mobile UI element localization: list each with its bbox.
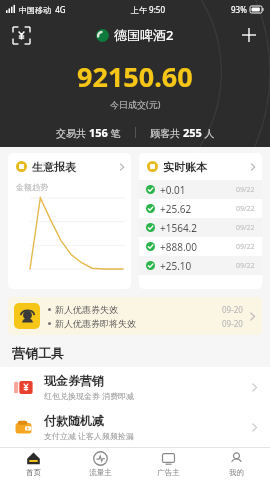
- staticText: +1564.2: [160, 221, 197, 235]
- staticText: 255: [183, 125, 202, 140]
- staticText: 顾客共: [150, 126, 183, 140]
- button[interactable]: 新人优惠券失效: [8, 297, 262, 335]
- staticText: 今日成交(元): [110, 98, 161, 110]
- staticText: 付款随机减: [44, 413, 104, 428]
- staticText: 新人优惠券失效: [55, 304, 118, 315]
- staticText: 笔: [108, 126, 121, 140]
- staticText: 首页: [26, 468, 41, 477]
- button[interactable]: 生意报表: [8, 153, 131, 289]
- staticText: 92150.60: [77, 58, 193, 95]
- staticText: 09-20: [222, 318, 243, 329]
- button[interactable]: Add: [238, 24, 260, 46]
- staticText: 支付立减 让客人频频捡漏: [44, 430, 135, 441]
- staticText: +888.00: [160, 240, 197, 254]
- staticText: 营销工具: [12, 345, 64, 361]
- staticText: 广告主: [157, 468, 180, 477]
- staticText: 09/22: [236, 261, 255, 271]
- button[interactable]: 流量主: [67, 448, 134, 480]
- button[interactable]: 现金券营销: [0, 367, 270, 407]
- button[interactable]: Scan to collect payment: [10, 24, 32, 46]
- staticText: 中国移动 4G: [19, 4, 66, 15]
- staticText: 实时账本: [163, 160, 207, 174]
- staticText: 09/22: [236, 204, 255, 214]
- button[interactable]: 实时账本: [139, 153, 262, 289]
- button[interactable]: 我的: [202, 448, 270, 480]
- staticText: 流量主: [89, 468, 112, 477]
- staticText: 09/22: [236, 223, 255, 233]
- button[interactable]: 广告主: [134, 448, 202, 480]
- staticText: 我的: [229, 468, 244, 477]
- staticText: 德国啤酒2: [114, 26, 174, 44]
- staticText: +25.62: [160, 202, 192, 216]
- button[interactable]: 付款随机减: [0, 407, 270, 447]
- staticText: 人: [202, 126, 215, 140]
- staticText: 09/22: [236, 185, 255, 195]
- staticText: 156: [89, 125, 108, 140]
- staticText: 红包兑换现金券 消费即减: [44, 390, 135, 401]
- staticText: 93%: [231, 4, 247, 15]
- staticText: +0.01: [160, 183, 186, 197]
- staticText: 新人优惠券即将失效: [55, 318, 136, 329]
- staticText: 金额趋势: [16, 182, 48, 192]
- button[interactable]: 首页: [0, 448, 67, 480]
- staticText: +25.10: [160, 259, 192, 273]
- staticText: 09/22: [236, 242, 255, 252]
- staticText: 上午 9:50: [131, 4, 165, 15]
- staticText: 现金券营销: [44, 373, 104, 388]
- staticText: 交易共: [56, 126, 89, 140]
- staticText: 生意报表: [32, 160, 76, 174]
- staticText: 09-20: [222, 304, 243, 315]
